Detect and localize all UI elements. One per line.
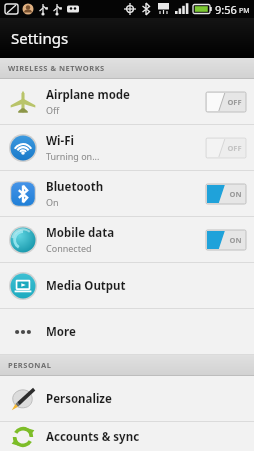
button[interactable]: Mobile data [0, 217, 254, 263]
other: More [9, 318, 37, 346]
staticText: PM [239, 6, 250, 16]
staticText: Airplane mode [46, 87, 130, 103]
staticText: Settings [11, 28, 69, 48]
staticText: Connected [46, 242, 92, 254]
button[interactable]: On [206, 230, 246, 250]
staticText: On [46, 196, 59, 208]
staticText: Bluetooth [46, 179, 104, 195]
button[interactable]: Bluetooth [0, 171, 254, 217]
button[interactable]: Media Output [0, 263, 254, 309]
staticText: PERSONAL [8, 360, 52, 370]
staticText: ON [229, 235, 242, 245]
button[interactable]: Off [206, 92, 246, 112]
other: Airplane mode [9, 88, 37, 116]
button[interactable]: Wi-Fi [0, 125, 254, 171]
staticText: OFF [227, 143, 242, 153]
staticText: Off [46, 104, 60, 116]
staticText: Media Output [46, 278, 126, 294]
button[interactable]: Personalize [0, 376, 254, 422]
button[interactable]: Off [206, 138, 246, 158]
staticText: Wi-Fi [46, 133, 74, 149]
staticText: Personalize [46, 391, 112, 407]
other: Wi-Fi [9, 134, 37, 162]
other: Media Output [9, 272, 37, 300]
staticText: Turning on... [46, 150, 100, 162]
staticText: Accounts & sync [46, 429, 140, 445]
staticText: Mobile data [46, 225, 115, 241]
staticText: 9:56 [215, 2, 237, 17]
staticText: OFF [227, 97, 242, 107]
button[interactable]: Accounts and sync [0, 422, 254, 451]
staticText: WIRELESS & NETWORKS [8, 63, 105, 73]
other: Accounts and sync [9, 423, 37, 451]
staticText: More [46, 324, 76, 340]
other: Mobile data [9, 226, 37, 254]
button[interactable]: Airplane mode [0, 79, 254, 125]
other: Personalize [9, 385, 37, 413]
other: Bluetooth [9, 180, 37, 208]
button[interactable]: On [206, 184, 246, 204]
button[interactable]: More [0, 309, 254, 355]
staticText: ON [229, 189, 242, 199]
